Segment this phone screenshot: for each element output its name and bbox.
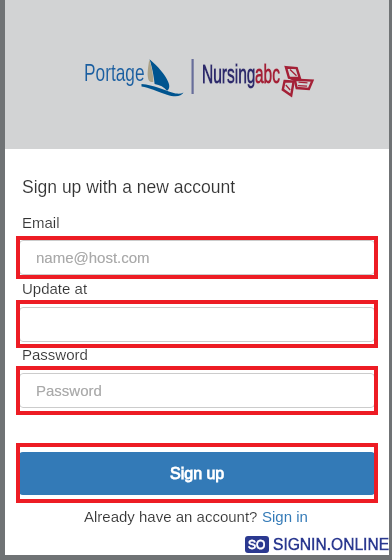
staticText: Password — [22, 346, 88, 363]
staticText: SIGNIN.ONLINE — [273, 536, 390, 553]
staticText: abc — [255, 60, 280, 88]
button[interactable]: name@host.com — [19, 240, 375, 275]
staticText: name@host.com — [36, 249, 150, 266]
staticText: Update at — [22, 280, 88, 297]
staticText: Sign up — [170, 465, 225, 483]
staticText: Nursing — [202, 60, 256, 88]
staticText: SO — [248, 538, 266, 551]
button[interactable]: Sign in — [262, 508, 308, 525]
button[interactable]: Password — [19, 373, 375, 408]
button[interactable]: Sign up — [19, 452, 375, 495]
button[interactable] — [19, 307, 375, 342]
staticText: Sign up with a new account — [22, 177, 236, 197]
staticText: Password — [36, 382, 102, 399]
staticText: Portage — [84, 59, 145, 86]
staticText: Already have an account? — [84, 508, 262, 525]
staticText: Email — [22, 214, 60, 231]
